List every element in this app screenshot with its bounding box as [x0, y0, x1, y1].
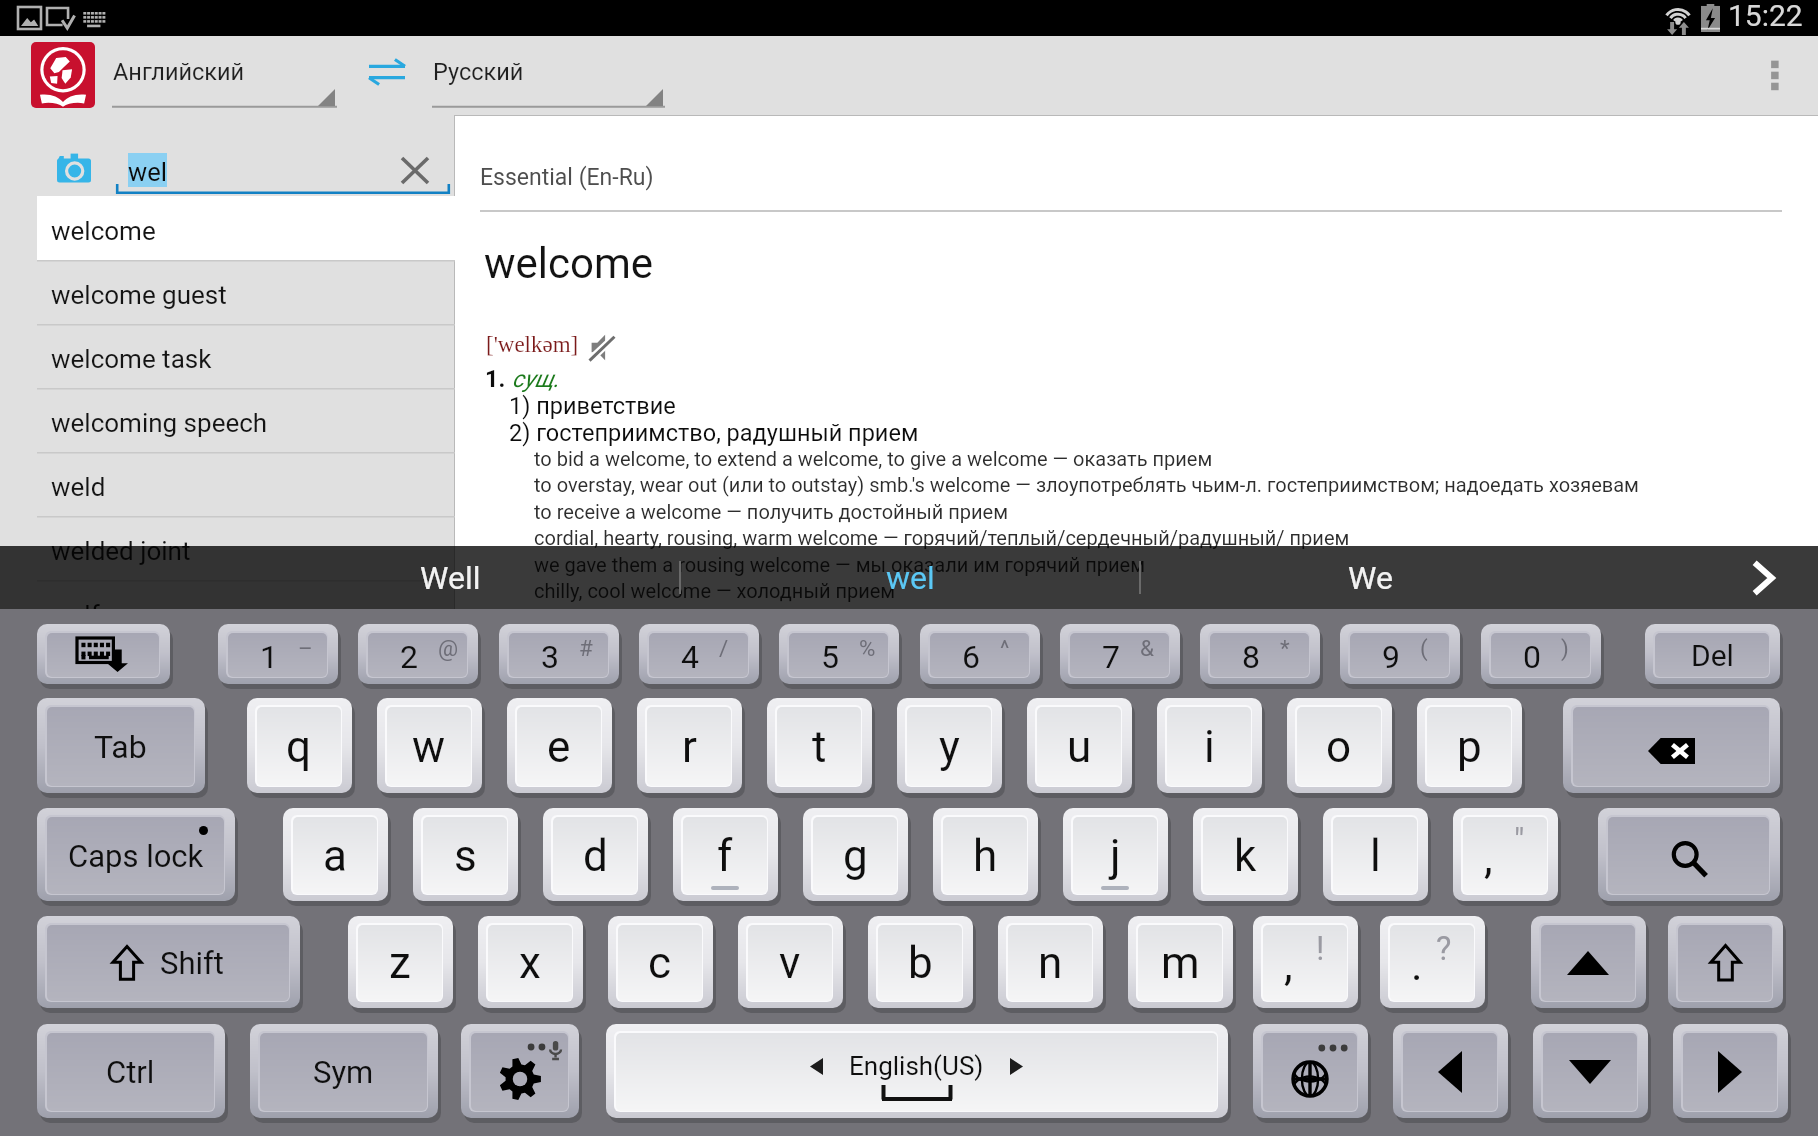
- staticText: h: [973, 830, 998, 882]
- button[interactable]: 0: [1481, 624, 1601, 691]
- button[interactable]: l: [1323, 808, 1428, 908]
- button[interactable]: p: [1417, 698, 1522, 800]
- button[interactable]: 3: [499, 624, 619, 691]
- button[interactable]: Hide keyboard: [37, 624, 170, 691]
- staticText: 1) приветствие: [509, 392, 676, 420]
- button[interactable]: Move down: [1533, 1024, 1648, 1125]
- button[interactable]: a: [283, 808, 388, 908]
- button[interactable]: 5: [779, 624, 899, 691]
- button[interactable]: b: [868, 916, 973, 1015]
- button[interactable]: k: [1193, 808, 1298, 908]
- button[interactable]: Move up: [1531, 916, 1646, 1015]
- staticText: Del: [1691, 638, 1734, 673]
- button[interactable]: h: [933, 808, 1038, 908]
- button[interactable]: i: [1157, 698, 1262, 800]
- button[interactable]: welcoming speech: [0, 388, 455, 452]
- button[interactable]: Well: [220, 546, 680, 609]
- button[interactable]: w: [377, 698, 482, 800]
- staticText: e: [547, 721, 571, 773]
- staticText: .: [1411, 939, 1423, 991]
- staticText: 2: [400, 638, 418, 676]
- button[interactable]: Sym: [250, 1024, 438, 1125]
- button[interactable]: 2: [358, 624, 478, 691]
- button[interactable]: o: [1287, 698, 1392, 800]
- button[interactable]: Backspace: [1563, 698, 1780, 800]
- button[interactable]: Shift: [1668, 916, 1783, 1015]
- button[interactable]: Pronounce: [589, 333, 615, 362]
- button[interactable]: welfare: [0, 580, 455, 644]
- button[interactable]: j: [1063, 808, 1168, 908]
- staticText: t: [812, 721, 827, 773]
- button[interactable]: q: [247, 698, 352, 800]
- button[interactable]: 1: [218, 624, 338, 691]
- button[interactable]: y: [897, 698, 1002, 800]
- button[interactable]: Del: [1645, 624, 1780, 691]
- button[interactable]: d: [543, 808, 648, 908]
- button[interactable]: Английский: [112, 36, 337, 115]
- button[interactable]: Move left: [1393, 1024, 1508, 1125]
- button[interactable]: 4: [639, 624, 759, 691]
- button[interactable]: t: [767, 698, 872, 800]
- staticText: to bid a welcome, to extend a welcome, t…: [534, 447, 1213, 470]
- button[interactable]: Caps lock: [37, 808, 235, 908]
- button[interactable]: v: [738, 916, 843, 1015]
- button[interactable]: ,: [1453, 808, 1558, 908]
- button[interactable]: Camera search: [57, 153, 91, 183]
- staticText: Ctrl: [106, 1054, 155, 1090]
- button[interactable]: x: [478, 916, 583, 1015]
- staticText: Caps lock: [68, 838, 204, 874]
- button[interactable]: ,: [1253, 916, 1358, 1015]
- staticText: l: [1370, 830, 1381, 882]
- staticText: сущ.: [512, 365, 560, 393]
- staticText: %: [859, 635, 876, 661]
- button[interactable]: welcome guest: [0, 260, 455, 324]
- button[interactable]: c: [608, 916, 713, 1015]
- button[interactable]: wel: [680, 546, 1140, 609]
- button[interactable]: welded joint: [0, 516, 455, 580]
- button[interactable]: More options: [1750, 52, 1794, 100]
- staticText: We: [1348, 559, 1393, 597]
- button[interactable]: f: [673, 808, 778, 908]
- button[interactable]: z: [348, 916, 453, 1015]
- button[interactable]: Keyboard settings: [461, 1024, 579, 1125]
- button[interactable]: m: [1128, 916, 1233, 1015]
- button[interactable]: welcome: [0, 196, 455, 260]
- button[interactable]: Ctrl: [37, 1024, 225, 1125]
- button[interactable]: Change input language: [1253, 1024, 1368, 1125]
- staticText: 6: [962, 638, 980, 676]
- staticText: /: [719, 635, 729, 661]
- button[interactable]: e: [507, 698, 612, 800]
- button[interactable]: 7: [1060, 624, 1180, 691]
- button[interactable]: welcome task: [0, 324, 455, 388]
- button[interactable]: Dictionary home: [31, 42, 95, 108]
- button[interactable]: 9: [1340, 624, 1460, 691]
- button[interactable]: u: [1027, 698, 1132, 800]
- button[interactable]: Clear text: [392, 148, 437, 192]
- button[interactable]: Shift: [37, 916, 300, 1015]
- button[interactable]: Swap languages: [369, 59, 405, 85]
- button[interactable]: Русский: [432, 36, 665, 115]
- staticText: Русский: [433, 58, 524, 86]
- button[interactable]: Move right: [1673, 1024, 1788, 1125]
- staticText: v: [779, 937, 801, 989]
- button[interactable]: English(US): [606, 1024, 1228, 1125]
- staticText: !: [1316, 930, 1325, 968]
- button[interactable]: n: [998, 916, 1103, 1015]
- staticText: o: [1326, 721, 1352, 773]
- button[interactable]: 6: [920, 624, 1040, 691]
- button[interactable]: We: [1140, 546, 1600, 609]
- staticText: a: [323, 830, 347, 882]
- staticText: j: [1110, 830, 1121, 882]
- button[interactable]: More suggestions: [1700, 546, 1818, 609]
- button[interactable]: g: [803, 808, 908, 908]
- staticText: 1: [260, 638, 278, 676]
- staticText: z: [389, 937, 411, 989]
- button[interactable]: .: [1380, 916, 1485, 1015]
- button[interactable]: weld: [0, 452, 455, 516]
- button[interactable]: 8: [1200, 624, 1320, 691]
- button[interactable]: Search: [1598, 808, 1780, 908]
- button[interactable]: r: [637, 698, 742, 800]
- button[interactable]: Tab: [37, 698, 205, 800]
- button[interactable]: s: [413, 808, 518, 908]
- staticText: ,: [1484, 832, 1493, 884]
